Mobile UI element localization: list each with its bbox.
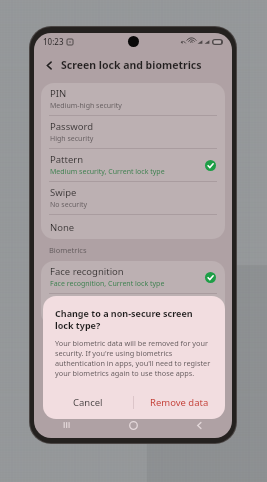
- button[interactable]: Back: [40, 56, 58, 74]
- staticText: No security: [50, 200, 88, 210]
- staticText: PIN: [50, 87, 67, 100]
- staticText: 10:23: [43, 36, 64, 47]
- staticText: Swipe: [50, 186, 77, 199]
- staticText: Password: [50, 120, 93, 133]
- button[interactable]: Password: [41, 116, 225, 148]
- button[interactable]: Cancel: [43, 389, 133, 415]
- button[interactable]: Pattern: [41, 149, 225, 181]
- button[interactable]: Home: [100, 412, 166, 438]
- staticText: None: [50, 221, 75, 234]
- staticText: Face recognition, Current lock type: [50, 279, 165, 289]
- staticText: Cancel: [73, 396, 103, 409]
- staticText: Fingerprints added: [50, 312, 113, 322]
- button[interactable]: Recents: [34, 412, 100, 438]
- staticText: Screen lock and biometrics: [61, 58, 202, 72]
- staticText: Medium security, Current lock type: [50, 167, 165, 177]
- staticText: Pattern: [50, 153, 84, 166]
- staticText: Fingerprints: [50, 298, 105, 311]
- button[interactable]: Back: [166, 412, 232, 438]
- staticText: Change to a non-secure screen lock type?: [55, 307, 213, 331]
- staticText: High security: [50, 134, 94, 144]
- button[interactable]: Fingerprints: [41, 294, 225, 326]
- staticText: Medium-high security: [50, 101, 122, 111]
- staticText: Remove data: [150, 396, 209, 409]
- button[interactable]: None: [41, 215, 225, 239]
- staticText: Biometrics: [49, 245, 87, 255]
- button[interactable]: Swipe: [41, 182, 225, 214]
- button[interactable]: PIN: [41, 83, 225, 115]
- button[interactable]: Face recognition: [41, 261, 225, 293]
- button[interactable]: Remove data: [134, 389, 225, 415]
- staticText: Your biometric data will be removed for …: [55, 338, 213, 378]
- staticText: Face recognition: [50, 265, 124, 278]
